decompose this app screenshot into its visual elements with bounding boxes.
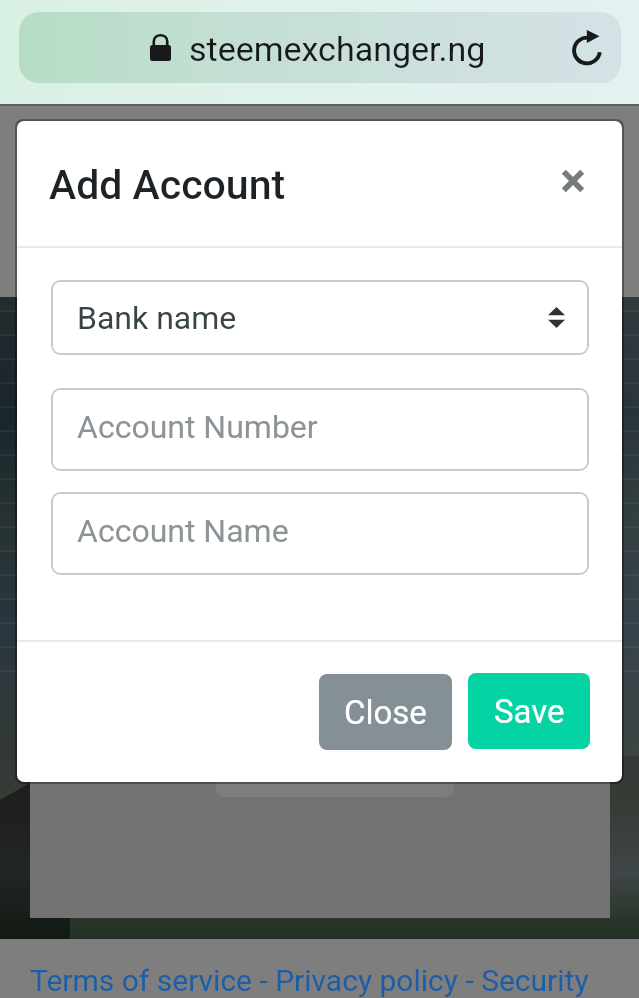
staticText: Close bbox=[344, 693, 427, 732]
button[interactable]: Close dialog bbox=[545, 153, 601, 209]
button[interactable]: Reload page bbox=[563, 26, 611, 74]
button[interactable] bbox=[19, 12, 621, 83]
staticText: Save bbox=[494, 692, 565, 731]
button[interactable]: Account Number bbox=[51, 388, 589, 471]
staticText: Terms of service - Privacy policy - Secu… bbox=[30, 963, 589, 998]
button[interactable]: Account Name bbox=[51, 492, 589, 575]
staticText: Bank name bbox=[77, 299, 237, 337]
staticText: steemexchanger.ng bbox=[189, 29, 486, 69]
staticText: Account Name bbox=[77, 512, 289, 550]
button[interactable]: Bank name bbox=[51, 280, 589, 355]
button[interactable]: Save bbox=[468, 673, 590, 749]
button[interactable]: Terms of service - Privacy policy - Secu… bbox=[0, 939, 639, 998]
staticText: Add Account bbox=[49, 161, 286, 209]
staticText: Account Number bbox=[77, 408, 318, 446]
button[interactable]: Close bbox=[319, 674, 452, 750]
